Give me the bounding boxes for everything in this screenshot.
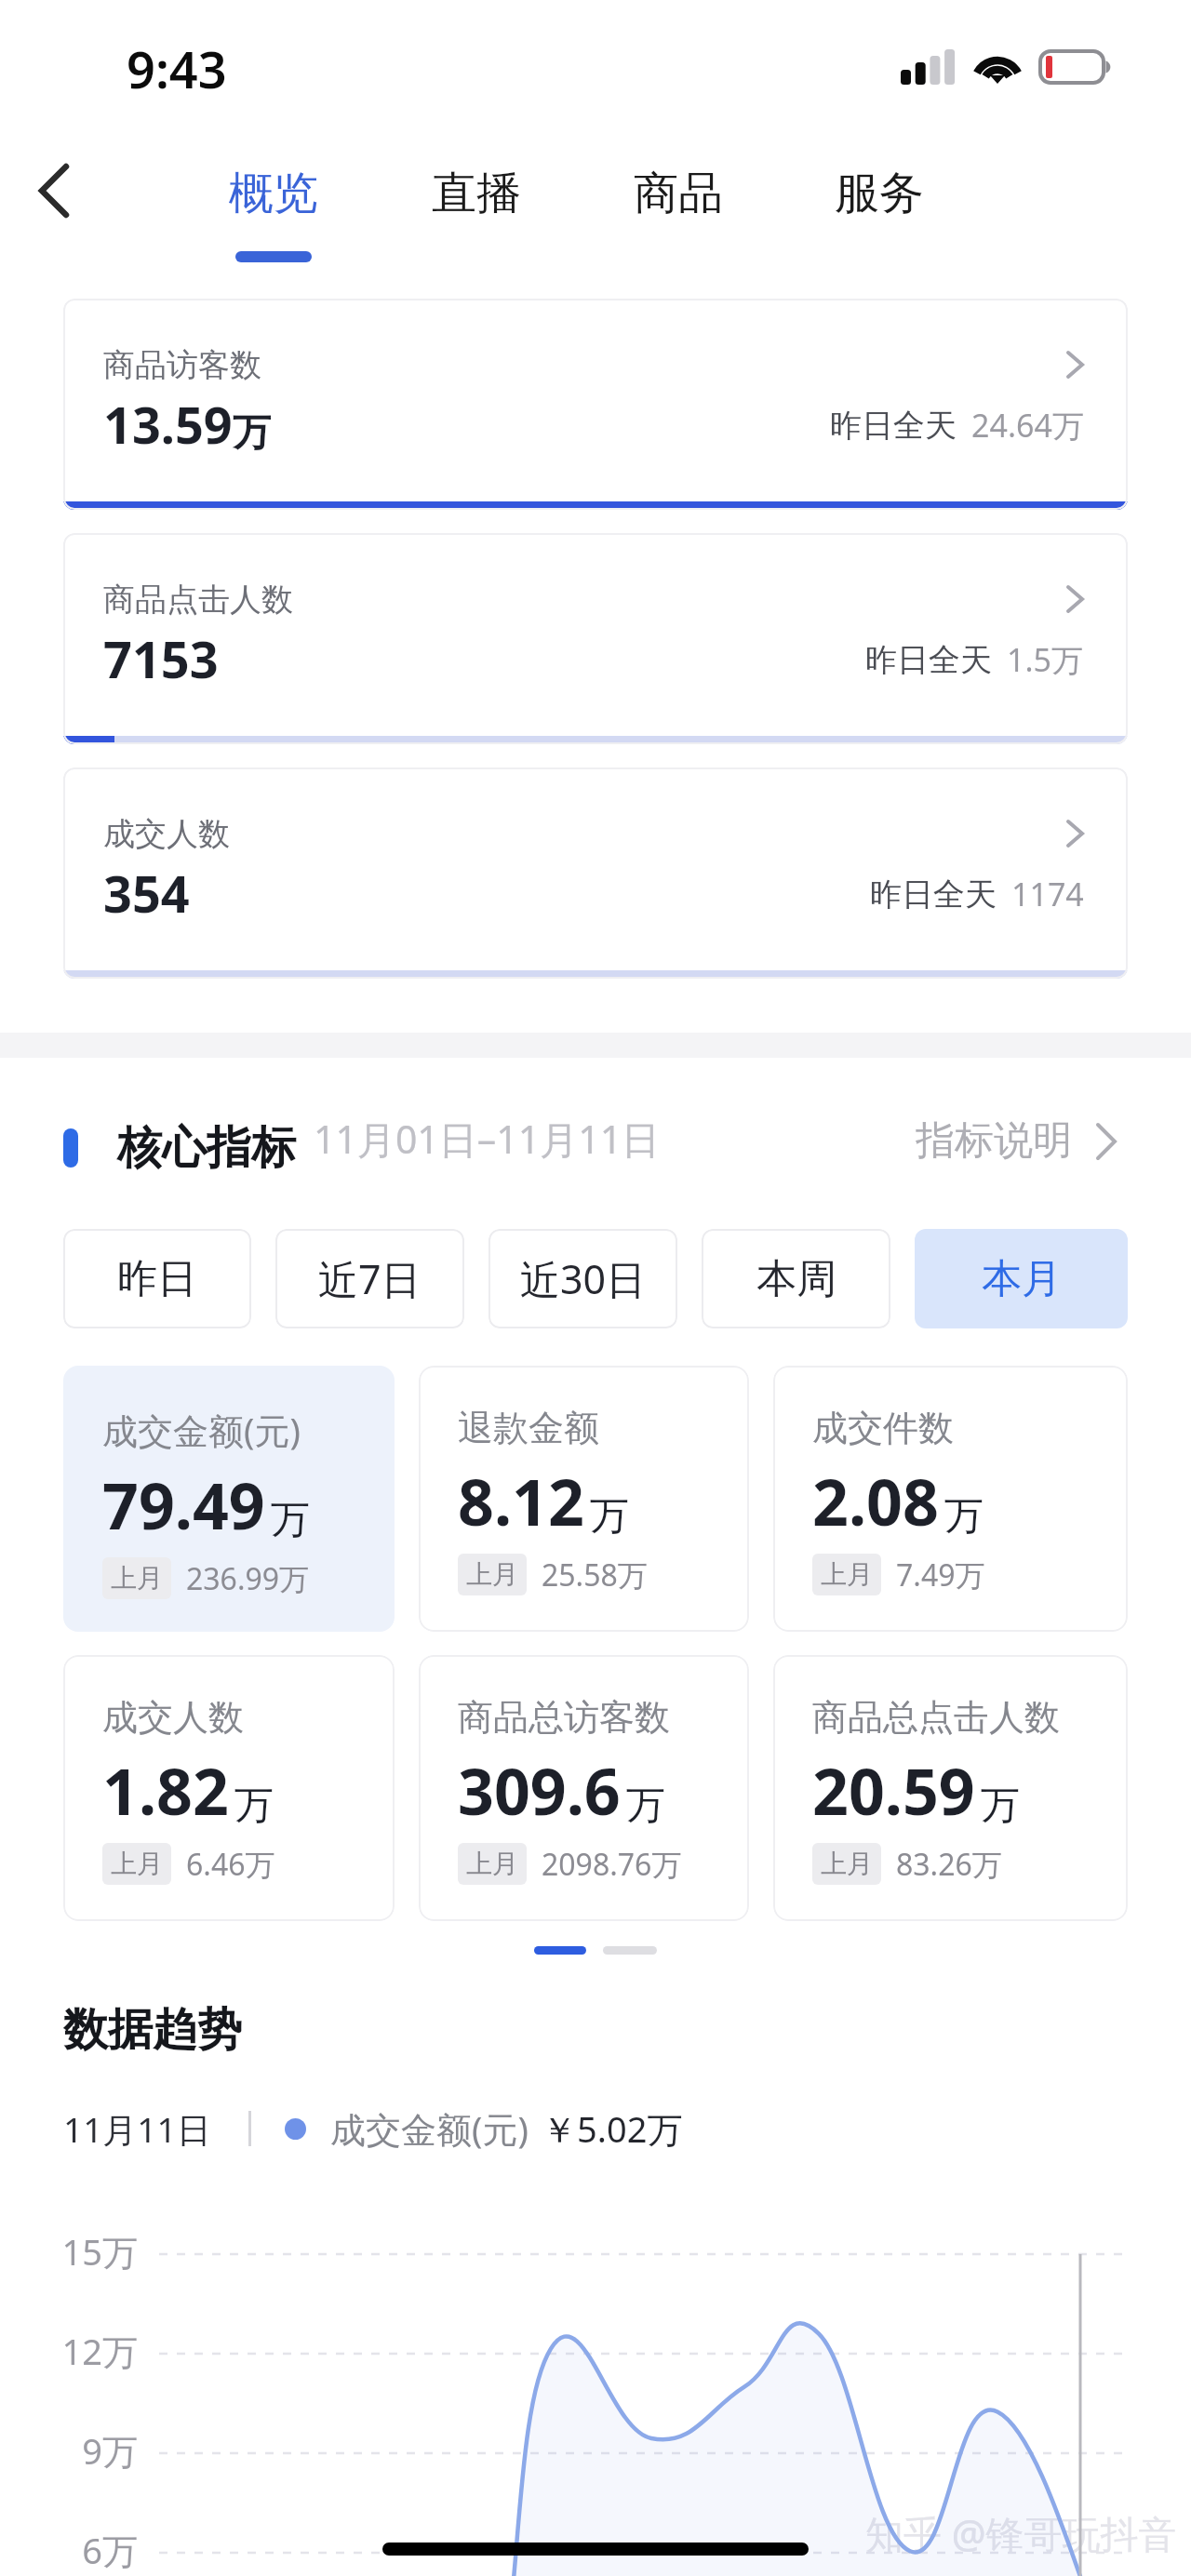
staticText: 成交件数 (812, 1406, 954, 1450)
staticText: 20.59 (812, 1747, 975, 1834)
staticText: 上月 (466, 1848, 518, 1880)
staticText: 万 (234, 1782, 274, 1831)
staticText: 退款金额 (458, 1406, 599, 1450)
staticText: 指标说明 (916, 1116, 1072, 1166)
staticText: 11月11日 (63, 2105, 211, 2153)
staticText: 近30日 (520, 1251, 647, 1306)
staticText: 昨日全天 (830, 406, 957, 446)
staticText: 商品总访客数 (458, 1695, 670, 1740)
button[interactable]: 退款金额 (419, 1366, 749, 1632)
staticText: 7153 (103, 624, 219, 693)
staticText: 万 (590, 1492, 629, 1542)
button[interactable]: 成交人数 (63, 1655, 395, 1921)
staticText: 成交人数 (102, 1695, 244, 1740)
staticText: 1.5万 (1007, 638, 1084, 681)
button[interactable]: 商品点击人数 (63, 533, 1128, 744)
staticText: 25.58万 (542, 1555, 648, 1595)
staticText: 知乎 @锋哥玩抖音 (865, 2507, 1177, 2559)
staticText: 2.08 (812, 1458, 939, 1544)
staticText: 上月 (821, 1558, 873, 1591)
staticText: 236.99万 (186, 1558, 310, 1599)
staticText: 6万 (0, 2526, 138, 2574)
staticText: 11月01日–11月11日 (314, 1113, 661, 1165)
staticText: 成交金额(元) (102, 1406, 301, 1454)
staticText: 9:43 (127, 34, 227, 103)
staticText: 数据趋势 (63, 2002, 242, 2058)
staticText: 83.26万 (896, 1844, 1002, 1885)
button[interactable]: 商品访客数 (63, 299, 1128, 510)
button[interactable]: 成交人数 (63, 767, 1128, 979)
staticText: 万 (271, 1496, 310, 1545)
staticText: 8.12 (458, 1458, 584, 1544)
staticText: 79.49 (102, 1462, 265, 1548)
staticText: 上月 (821, 1848, 873, 1880)
button[interactable]: 商品总访客数 (419, 1655, 749, 1921)
button[interactable]: 近7日 (275, 1229, 464, 1328)
staticText: 309.6 (458, 1747, 621, 1834)
staticText: 6.46万 (186, 1844, 275, 1885)
staticText: 15万 (0, 2227, 138, 2276)
staticText: 13.59 (103, 390, 233, 459)
button[interactable]: 本周 (702, 1229, 890, 1328)
staticText: 商品访客数 (103, 345, 261, 385)
staticText: 昨日全天 (865, 640, 992, 680)
button[interactable]: 概览 (201, 166, 346, 262)
staticText: 成交金额(元) (330, 2104, 529, 2153)
staticText: 昨日全天 (870, 874, 997, 914)
staticText: 万 (981, 1782, 1020, 1831)
staticText: 本月 (982, 1254, 1062, 1304)
staticText: 上月 (111, 1562, 163, 1595)
staticText: ￥5.02万 (542, 2104, 683, 2153)
button[interactable]: 商品 (606, 166, 751, 251)
staticText: 2098.76万 (542, 1844, 682, 1885)
staticText: 商品点击人数 (103, 580, 293, 620)
button[interactable]: 指标说明 (916, 1116, 1128, 1166)
staticText: 成交人数 (103, 814, 230, 854)
button[interactable]: 直播 (404, 166, 549, 251)
staticText: 直播 (432, 166, 521, 221)
staticText: 万 (944, 1492, 984, 1542)
staticText: 上月 (111, 1848, 163, 1880)
staticText: 1174 (1011, 873, 1084, 915)
staticText: 商品总点击人数 (812, 1695, 1060, 1740)
staticText: 概览 (229, 166, 318, 221)
button[interactable]: 服务 (807, 166, 952, 251)
staticText: 12万 (0, 2327, 138, 2375)
staticText: 商品 (634, 166, 723, 221)
staticText: 近7日 (318, 1251, 422, 1306)
staticText: 24.64万 (971, 404, 1084, 447)
button[interactable]: 成交件数 (773, 1366, 1128, 1632)
button[interactable]: 近30日 (488, 1229, 677, 1328)
button[interactable]: 昨日 (63, 1229, 251, 1328)
staticText: 本周 (756, 1254, 836, 1304)
staticText: 1.82 (102, 1747, 229, 1834)
staticText: 上月 (466, 1558, 518, 1591)
staticText: 9万 (0, 2426, 138, 2475)
button[interactable]: 商品总点击人数 (773, 1655, 1128, 1921)
staticText: 354 (103, 859, 190, 928)
staticText: 万 (626, 1782, 665, 1831)
button[interactable]: 本月 (915, 1229, 1128, 1328)
staticText: 7.49万 (896, 1555, 985, 1595)
staticText: 昨日 (117, 1254, 197, 1304)
button[interactable]: Back (19, 155, 89, 226)
staticText: 万 (233, 409, 271, 458)
staticText: 核心指标 (117, 1120, 296, 1176)
staticText: 服务 (835, 166, 924, 221)
button[interactable]: 成交金额(元) (63, 1366, 395, 1632)
